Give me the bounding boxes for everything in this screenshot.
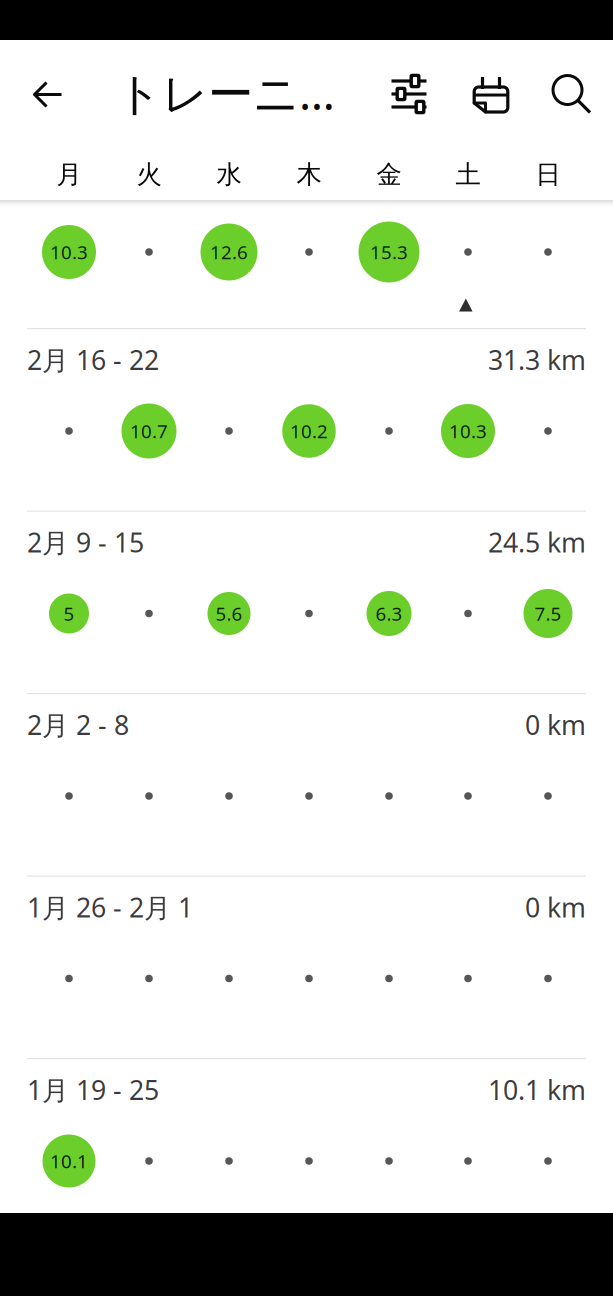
staticText: 2月 16 - 22 <box>27 342 159 377</box>
button[interactable]: Filter <box>377 42 441 147</box>
button[interactable]: Back <box>14 42 82 147</box>
staticText: 7.5 <box>534 601 561 626</box>
staticText: 10.2 <box>290 419 328 443</box>
staticText: 木 <box>296 159 321 190</box>
staticText: 12.6 <box>210 240 248 264</box>
staticText: 10.3 <box>449 419 487 443</box>
staticText: 24.5 km <box>488 524 586 560</box>
staticText: 2月 2 - 8 <box>27 707 129 742</box>
staticText: 5 <box>63 601 74 626</box>
staticText: 10.1 km <box>488 1072 586 1107</box>
button[interactable]: Search <box>540 42 604 147</box>
staticText: 10.7 <box>130 419 168 443</box>
button[interactable]: Calendar <box>459 42 523 147</box>
staticText: 15.3 <box>370 240 408 264</box>
staticText: 月 <box>56 159 81 190</box>
staticText: 5.6 <box>215 601 242 626</box>
staticText: 火 <box>136 159 161 190</box>
staticText: 6.3 <box>375 601 402 626</box>
staticText: 1月 19 - 25 <box>27 1072 159 1107</box>
staticText: 10.3 <box>50 240 88 264</box>
staticText: 10.1 <box>50 1149 88 1173</box>
staticText: トレーニ… <box>116 62 335 123</box>
staticText: 水 <box>216 159 241 190</box>
staticText: 0 km <box>525 707 586 742</box>
staticText: 0 km <box>525 889 586 925</box>
staticText: 土 <box>455 159 480 190</box>
staticText: 2月 9 - 15 <box>27 524 144 560</box>
staticText: 31.3 km <box>488 342 586 377</box>
staticText: 1月 26 - 2月 1 <box>27 889 193 925</box>
staticText: 金 <box>376 159 401 190</box>
staticText: 日 <box>535 159 560 190</box>
